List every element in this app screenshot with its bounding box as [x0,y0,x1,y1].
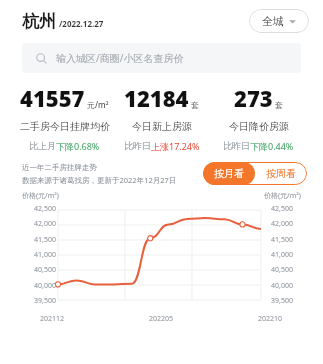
staticText: 41,500 [34,235,56,245]
staticText: 40,000 [34,281,56,291]
button[interactable]: 按月看 [203,162,255,185]
staticText: 二手房今日挂牌均价 [20,120,110,133]
staticText: 按周看 [266,167,296,180]
staticText: 今日新上房源 [132,120,192,133]
staticText: 套 [275,100,283,110]
staticText: 40,500 [271,265,293,275]
staticText: 42,000 [34,219,56,229]
staticText: 价格(元/m²) [22,191,59,201]
staticText: 比昨日 [223,140,250,151]
staticText: /2022.12.27 [59,18,104,29]
staticText: 41,500 [271,235,293,245]
staticText: 近一年二手房挂牌走势 [22,163,97,172]
staticText: 价格(元/m²) [264,191,301,201]
button[interactable]: 全城 [249,9,309,33]
staticText: 40,000 [271,281,293,291]
staticText: 输入城区/商圈/小区名查房价 [56,51,184,65]
staticText: 40,500 [34,265,56,275]
staticText: 杭州 [22,11,56,32]
staticText: 202205 [149,314,174,324]
staticText: 202112 [40,314,65,324]
staticText: 42,000 [271,219,293,229]
staticText: 12184 [124,83,189,113]
button[interactable]: 41557 [16,83,113,152]
staticText: 全城 [262,14,284,28]
staticText: 上涨17.24% [151,140,200,152]
other: Expand region selector [289,18,296,25]
staticText: 273 [234,83,273,113]
staticText: 下降0.44% [250,140,294,152]
staticText: 39,500 [34,296,56,306]
staticText: 41,000 [34,250,56,260]
staticText: 41557 [20,83,85,113]
button[interactable]: 12184 [113,83,210,152]
staticText: 按月看 [214,167,244,180]
staticText: 数据来源于诸葛找房，更新于2022年12月27日 [22,175,177,185]
button[interactable]: 按周看 [255,162,307,185]
staticText: 比昨日 [124,140,151,151]
button[interactable]: 输入城区/商圈/小区名查房价 [22,43,301,73]
staticText: 下降0.68% [56,140,100,152]
staticText: 42,500 [34,204,56,214]
staticText: 41,000 [271,250,293,260]
staticText: 元/m² [87,99,109,110]
staticText: 42,500 [271,204,293,214]
staticText: 今日降价房源 [229,120,289,133]
staticText: 套 [191,100,199,110]
staticText: 202210 [258,314,283,324]
staticText: 比上月 [29,140,56,151]
button[interactable]: 273 [210,83,307,152]
staticText: 39,500 [271,296,293,306]
